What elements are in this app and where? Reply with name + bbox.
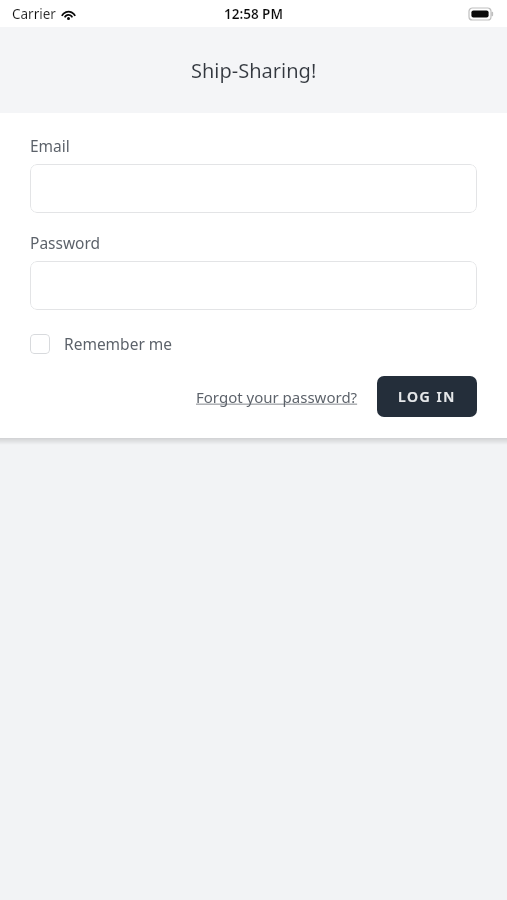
staticText: Remember me (64, 333, 173, 354)
staticText: 12:58 PM (224, 5, 283, 23)
staticText: Password (30, 232, 101, 253)
staticText: Email (30, 135, 70, 156)
button[interactable]: LOG IN (377, 376, 477, 417)
button[interactable]: Remember me (30, 333, 173, 354)
button[interactable]: Forgot your password? (196, 381, 358, 413)
button[interactable] (30, 261, 477, 310)
staticText: Forgot your password? (196, 387, 358, 407)
button[interactable] (30, 164, 477, 213)
staticText: Carrier (12, 5, 56, 23)
staticText: LOG IN (398, 387, 457, 406)
staticText: Ship-Sharing! (191, 57, 317, 84)
